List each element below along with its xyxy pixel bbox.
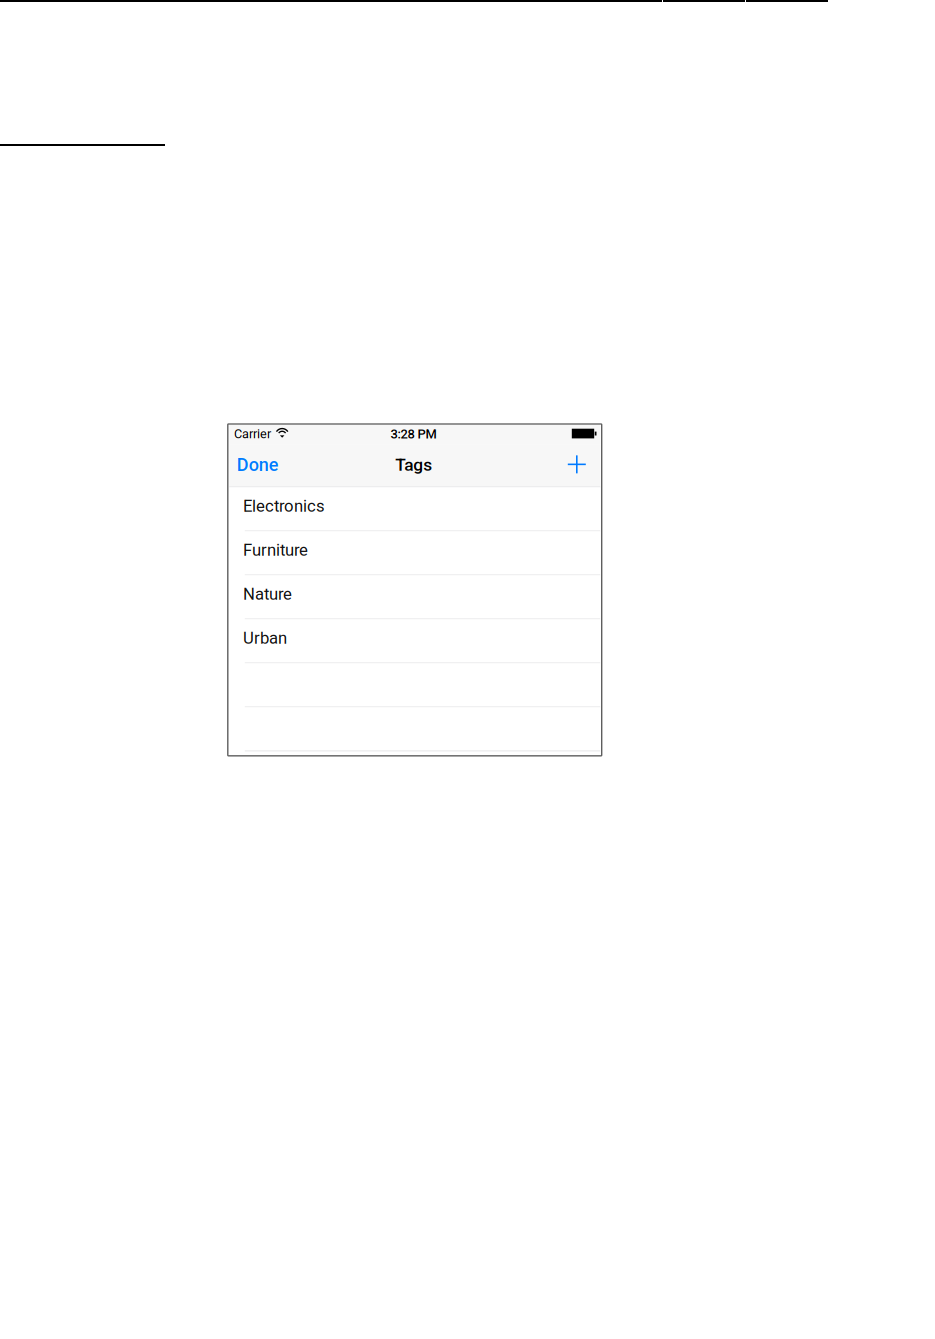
staticText: Electronics [243,496,325,516]
staticText: Furniture [243,540,308,560]
staticText: Urban [243,628,287,648]
staticText: Carrier [234,426,271,441]
button[interactable]: Urban [229,619,600,663]
staticText: 3:28 PM [390,426,436,442]
button[interactable]: Furniture [229,531,600,575]
staticText: Done [237,454,279,475]
staticText: Tags [395,455,432,475]
button[interactable]: Nature [229,575,600,619]
button[interactable]: Electronics [229,487,600,531]
staticText: Nature [243,584,292,604]
button[interactable]: Done [229,445,291,487]
button[interactable]: Add tag [555,445,600,487]
